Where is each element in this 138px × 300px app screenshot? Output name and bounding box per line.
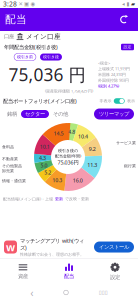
staticText: ✕ [18,1,22,7]
staticText: 更新 [55,196,63,201]
button[interactable]: セクター [21,110,49,118]
staticText: w [6,240,15,254]
button[interactable]: 設定 [121,44,134,50]
button[interactable]: ツリーマップ [94,108,134,119]
staticText: 配当ポートフォリオ(メイン口座) [3,97,77,105]
staticText: ‹ [30,285,33,300]
staticText: ▰ [131,1,135,7]
staticText: 4.3 [39,154,46,162]
staticText: ツリーマップ [99,111,129,117]
button[interactable]: 資産 [0,258,46,285]
staticText: 10.1 [40,143,50,150]
staticText: 3:28 [3,0,17,8]
button[interactable]: 口座 [0,31,138,42]
staticText: メイン口座 [26,32,61,41]
staticText: 10.3 [52,177,62,184]
staticText: <税金> [98,60,110,66]
staticText: 配当 [5,13,27,26]
staticText: サービス業 [116,140,136,145]
staticText: 配当 [64,273,74,280]
staticText: ▮ [126,1,129,7]
staticText: 税引き前 [17,54,33,59]
button[interactable]: w [0,236,138,258]
staticText: 年間配当金額(税引き後) [4,43,58,51]
staticText: その他製品 [2,163,22,168]
staticText: 銀行業 [124,163,136,168]
staticText: (税別 4.27%) [98,83,119,89]
staticText: インストール [99,244,129,250]
staticText: 設定 [123,44,131,49]
staticText: 表示 [127,98,135,103]
staticText: 不動産業 [2,156,18,161]
button[interactable]: 税引き前 [14,53,36,60]
staticText: 14.5 [53,130,63,137]
button[interactable]: 設定 [92,258,138,285]
staticText: ◉ [30,1,35,7]
staticText: 5.0 [40,162,47,169]
staticText: 銘柄 [7,111,17,117]
staticText: 情報・通信業 [2,178,26,183]
staticText: 口座 [4,33,14,40]
staticText: マッチングアプリ with(ウィズ) [20,237,84,251]
staticText: 資産 [18,273,28,280]
staticText: 税引き後の [58,148,78,153]
staticText: 75,036円 [57,159,78,166]
button[interactable]: 更新 [115,10,133,28]
staticText: 配当金額(年間) [55,153,81,159]
staticText: 設定 [110,274,120,280]
staticText: 外国税控除 903円 [98,78,129,83]
button[interactable]: 銘柄 [4,110,20,118]
staticText: 税引き後 [43,54,59,59]
staticText: 9.2 [89,145,96,152]
staticText: 4.8 [68,128,75,135]
staticText: 米国株 24,310円 [98,72,126,77]
button[interactable]: 配当 [46,258,92,285]
staticText: セクター [25,111,45,117]
staticText: その他 [53,111,68,117]
staticText: 上場株式 11,919円 [98,66,130,71]
staticText: 食料品 [2,144,14,149]
staticText: 卸売業 [2,168,14,173]
button[interactable]: その他 [50,110,71,118]
staticText: 配当情報(メイン口座)・上場 [3,196,53,202]
staticText: 非表示 [99,98,111,103]
staticText: ▯▯▯ [99,289,108,296]
staticText: 10.4 [78,133,88,140]
staticText: 75,036 円 [8,63,85,86]
staticText: ◂ [122,1,125,7]
staticText: 性格診断で出会う、理想のお相手。 [20,252,84,257]
button[interactable]: 表示切替 [113,97,125,104]
button[interactable]: 税引き後 [40,53,62,60]
staticText: (資産取得価額 1,758,429 円) [45,88,93,94]
staticText: 16.0 [73,177,83,184]
staticText: ▣ [24,1,29,7]
staticText: 11.3 [87,161,97,168]
staticText: 5.2 [44,169,51,176]
staticText: で反映・更新 [65,196,89,201]
